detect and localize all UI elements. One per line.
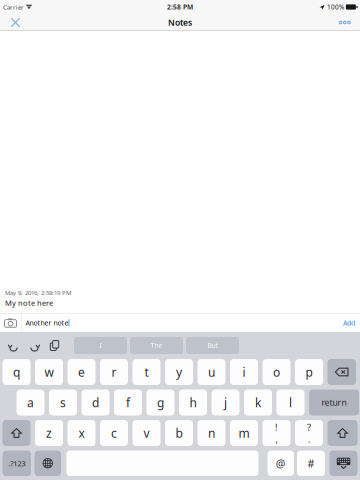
staticText: .?123 xyxy=(8,458,25,468)
button[interactable]: Shift xyxy=(2,420,30,446)
staticText: g xyxy=(157,394,164,411)
button[interactable]: Close xyxy=(0,14,27,31)
staticText: t xyxy=(144,364,148,380)
staticText: j xyxy=(224,394,227,411)
button[interactable]: m xyxy=(230,420,258,446)
button[interactable]: return xyxy=(309,389,359,415)
staticText: l xyxy=(289,394,292,411)
button[interactable]: g xyxy=(146,389,174,415)
staticText: My note here xyxy=(5,298,53,308)
staticText: b xyxy=(175,425,182,441)
button[interactable]: # xyxy=(297,450,325,476)
staticText: Another note xyxy=(25,318,68,327)
button[interactable]: s xyxy=(49,389,77,415)
staticText: But xyxy=(207,341,217,350)
staticText: w xyxy=(44,364,53,380)
button[interactable]: x xyxy=(67,420,95,446)
button[interactable]: ! xyxy=(262,420,290,446)
staticText: # xyxy=(307,456,314,470)
button[interactable]: Redo xyxy=(27,338,42,352)
staticText: @ xyxy=(276,456,286,470)
staticText: f xyxy=(126,394,130,411)
staticText: a xyxy=(27,394,34,411)
button[interactable]: l xyxy=(276,389,304,415)
staticText: o xyxy=(273,364,280,380)
staticText: c xyxy=(111,425,117,441)
staticText: Notes xyxy=(168,17,192,28)
staticText: d xyxy=(92,394,99,411)
staticText: r xyxy=(111,364,116,380)
staticText: Add xyxy=(343,318,355,327)
button[interactable]: .?123 xyxy=(2,450,31,476)
staticText: y xyxy=(176,364,182,380)
button[interactable]: z xyxy=(35,420,63,446)
button[interactable]: Delete xyxy=(327,359,356,385)
staticText: . xyxy=(308,433,310,445)
button[interactable]: f xyxy=(114,389,142,415)
staticText: return xyxy=(321,397,346,408)
staticText: z xyxy=(46,425,52,441)
staticText: q xyxy=(13,364,20,380)
button[interactable]: j xyxy=(211,389,239,415)
button[interactable]: e xyxy=(67,359,95,385)
button[interactable]: n xyxy=(197,420,225,446)
button[interactable]: h xyxy=(179,389,207,415)
staticText: i xyxy=(242,364,245,380)
button[interactable]: More options xyxy=(332,16,360,29)
button[interactable]: a xyxy=(16,389,44,415)
button[interactable]: Paste xyxy=(48,338,61,352)
staticText: Carrier xyxy=(3,3,24,11)
button[interactable]: p xyxy=(295,359,323,385)
button[interactable]: c xyxy=(100,420,128,446)
button[interactable]: But xyxy=(186,337,239,354)
button[interactable]: q xyxy=(2,359,30,385)
button[interactable]: d xyxy=(81,389,109,415)
staticText: 100% xyxy=(327,3,344,11)
button[interactable]: @ xyxy=(267,450,294,476)
button[interactable]: b xyxy=(165,420,193,446)
button[interactable]: y xyxy=(165,359,193,385)
staticText: v xyxy=(143,425,149,441)
button[interactable]: w xyxy=(35,359,63,385)
staticText: h xyxy=(189,394,196,411)
staticText: e xyxy=(78,364,85,380)
button[interactable]: Undo xyxy=(6,338,21,352)
button[interactable]: u xyxy=(197,359,225,385)
staticText: ? xyxy=(307,421,311,433)
staticText: The xyxy=(150,341,162,350)
staticText: I xyxy=(99,341,101,350)
button[interactable]: The xyxy=(130,337,183,354)
button[interactable]: space xyxy=(66,450,258,476)
button[interactable]: v xyxy=(132,420,160,446)
button[interactable]: I xyxy=(74,337,127,354)
button[interactable]: o xyxy=(262,359,290,385)
staticText: ! xyxy=(275,421,278,433)
staticText: May 9, 2016, 2:58:19 PM xyxy=(5,289,71,297)
staticText: m xyxy=(238,425,249,441)
button[interactable]: k xyxy=(244,389,272,415)
button[interactable]: Shift xyxy=(327,420,357,446)
staticText: 2:58 PM xyxy=(167,2,193,12)
staticText: , xyxy=(275,433,277,445)
staticText: p xyxy=(305,364,312,380)
button[interactable]: i xyxy=(230,359,258,385)
button[interactable]: r xyxy=(100,359,128,385)
button[interactable]: ? xyxy=(295,420,323,446)
button[interactable]: Hide keyboard xyxy=(329,450,357,476)
button[interactable]: Insert photo xyxy=(0,314,21,331)
staticText: x xyxy=(78,425,84,441)
button[interactable]: Next keyboard xyxy=(34,450,61,476)
button[interactable]: Add xyxy=(338,314,360,331)
staticText: u xyxy=(208,364,215,380)
staticText: k xyxy=(255,394,261,411)
staticText: s xyxy=(60,394,66,411)
staticText: n xyxy=(208,425,215,441)
button[interactable]: t xyxy=(132,359,160,385)
